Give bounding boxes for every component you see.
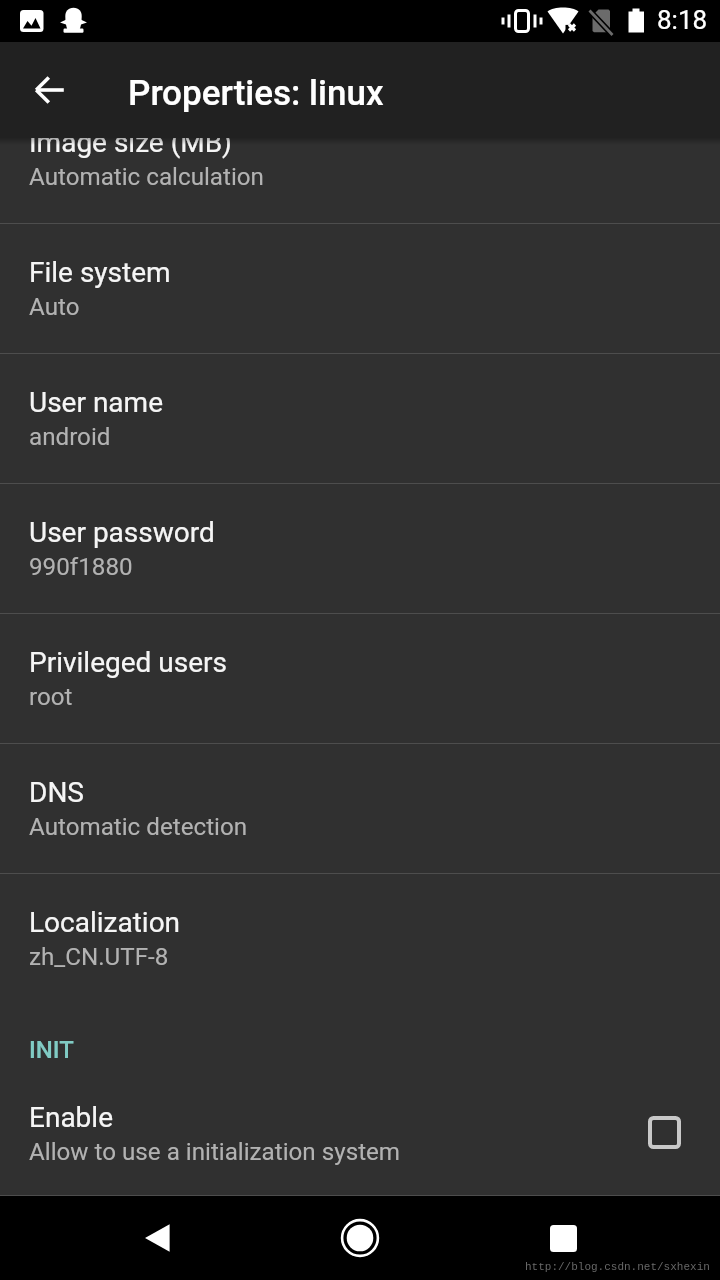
button[interactable]: DNS (0, 742, 720, 872)
staticText: Automatic detection (29, 813, 248, 841)
staticText: 8:18 (657, 5, 708, 35)
staticText: Allow to use a initialization system (29, 1138, 401, 1166)
staticText: INIT (29, 1036, 74, 1064)
button[interactable]: Privileged users (0, 612, 720, 742)
staticText: Automatic calculation (29, 163, 264, 191)
button[interactable]: Home (318, 1196, 402, 1280)
staticText: Localization (29, 906, 181, 939)
button[interactable]: Back (115, 1196, 199, 1280)
staticText: Privileged users (29, 646, 227, 679)
button[interactable]: Navigate up (21, 61, 78, 118)
button[interactable]: Recent apps (521, 1196, 605, 1280)
staticText: root (29, 683, 73, 711)
button[interactable]: File system (0, 222, 720, 352)
staticText: Image size (MB) (29, 126, 232, 159)
staticText: Properties: linux (128, 73, 384, 114)
button[interactable]: User name (0, 352, 720, 482)
staticText: File system (29, 256, 171, 289)
staticText: 990f1880 (29, 553, 133, 581)
staticText: http://blog.csdn.net/sxhexin (525, 1261, 710, 1273)
staticText: Enable (29, 1101, 113, 1134)
staticText: DNS (29, 776, 84, 809)
staticText: Auto (29, 293, 80, 321)
button[interactable]: Enable (0, 1067, 720, 1197)
button[interactable]: User password (0, 482, 720, 612)
staticText: User name (29, 386, 163, 419)
button[interactable]: Localization (0, 872, 720, 1002)
staticText: android (29, 423, 111, 451)
button[interactable]: Enable initialization system (642, 1110, 686, 1154)
staticText: User password (29, 516, 215, 549)
staticText: zh_CN.UTF-8 (29, 943, 169, 971)
button[interactable]: Image size (MB) (0, 92, 720, 222)
